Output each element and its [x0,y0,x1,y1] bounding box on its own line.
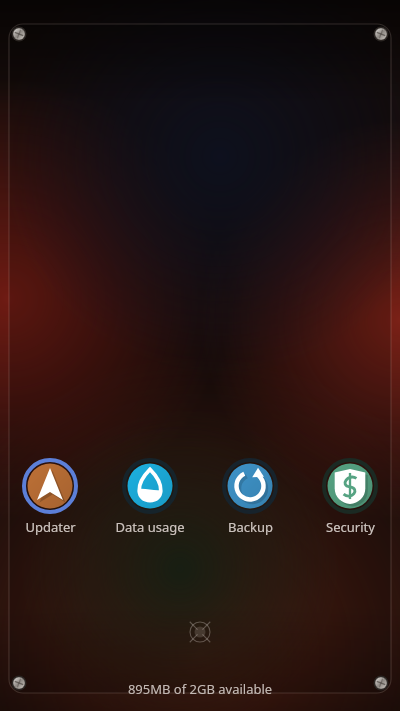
staticText: 895MB of 2GB available [0,680,400,698]
staticText: Backup [228,518,273,536]
button[interactable]: Updater [0,457,100,536]
staticText: Updater [25,518,76,536]
staticText: Security [326,518,375,536]
button[interactable]: Disabled [186,618,214,646]
button[interactable]: Data usage [100,457,200,536]
button[interactable]: Security [300,457,400,536]
button[interactable]: Backup [200,457,300,536]
staticText: Data usage [115,518,185,536]
